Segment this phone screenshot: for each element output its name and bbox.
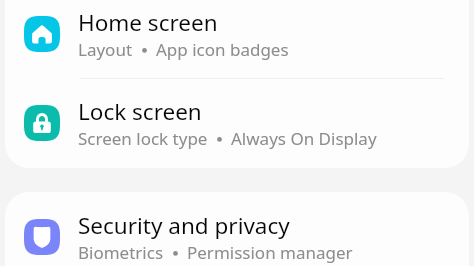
staticText: Always On Display: [231, 127, 377, 150]
staticText: Layout: [78, 38, 133, 61]
staticText: Lock screen: [78, 96, 202, 127]
staticText: Home screen: [78, 7, 218, 38]
staticText: Biometrics: [78, 241, 164, 264]
staticText: Screen lock type: [78, 127, 208, 150]
staticText: Permission manager: [187, 241, 353, 264]
staticText: App icon badges: [156, 38, 289, 61]
button[interactable]: Security and privacy: [5, 192, 469, 266]
button[interactable]: Lock screen: [5, 79, 469, 168]
staticText: Security and privacy: [78, 210, 290, 241]
button[interactable]: Home screen: [5, 0, 469, 79]
